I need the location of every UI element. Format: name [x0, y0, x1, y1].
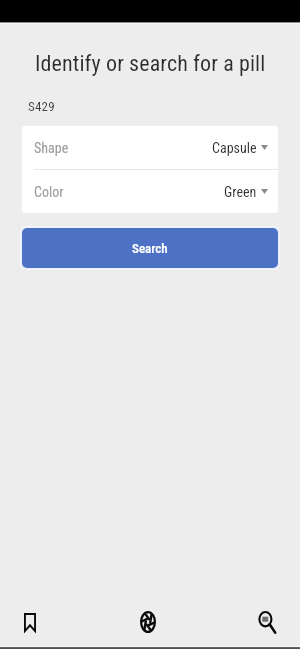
button[interactable]: Search pills — [240, 600, 300, 644]
button[interactable]: Saved pills — [0, 600, 60, 644]
staticText: Shape — [34, 140, 69, 156]
button[interactable]: Search — [22, 228, 278, 268]
button[interactable]: Color — [22, 170, 278, 213]
button[interactable]: Shape — [22, 126, 278, 169]
staticText: Green — [224, 184, 257, 200]
staticText: Search — [132, 241, 168, 256]
button[interactable]: Identify with camera — [60, 600, 240, 644]
staticText: Color — [34, 184, 64, 200]
staticText: Capsule — [212, 140, 257, 156]
staticText: S429 — [28, 99, 55, 114]
staticText: Identify or search for a pill — [35, 51, 266, 77]
